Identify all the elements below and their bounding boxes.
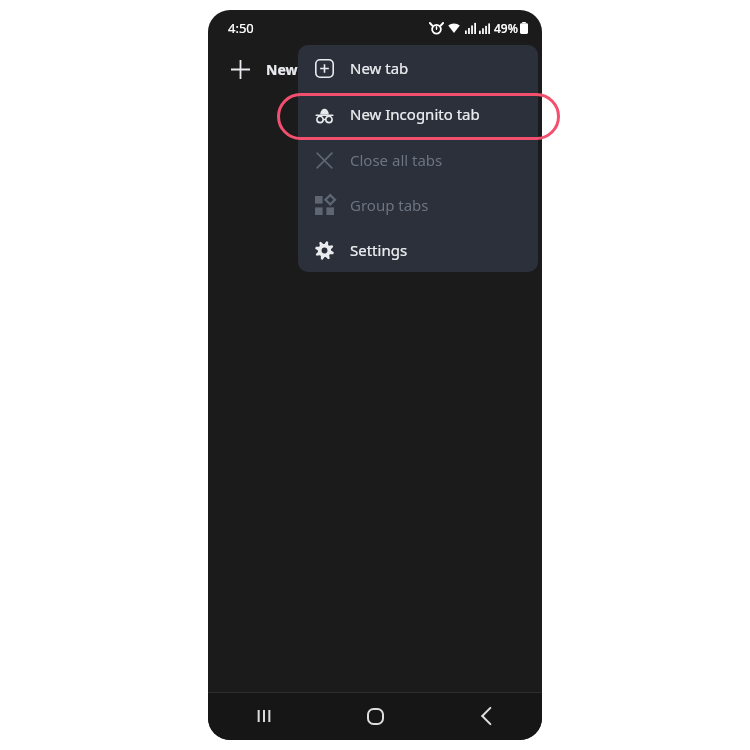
button[interactable]: New Incognito tab <box>298 91 538 137</box>
button[interactable]: Group tabs <box>298 182 538 227</box>
staticText: Settings <box>350 240 408 260</box>
button[interactable]: Home <box>320 692 431 740</box>
button[interactable]: Back <box>431 692 542 740</box>
button[interactable]: Recent apps <box>208 692 320 740</box>
staticText: New tab <box>350 58 409 78</box>
staticText: 49% <box>494 20 518 36</box>
button[interactable]: New tab <box>298 45 538 91</box>
button[interactable]: Settings <box>298 227 538 272</box>
button[interactable]: New tab <box>220 49 260 89</box>
staticText: 4:50 <box>228 19 254 37</box>
staticText: New tab <box>266 60 325 79</box>
button[interactable]: Close all tabs <box>298 137 538 182</box>
staticText: Group tabs <box>350 195 429 215</box>
staticText: New Incognito tab <box>350 104 480 124</box>
staticText: Close all tabs <box>350 150 443 170</box>
